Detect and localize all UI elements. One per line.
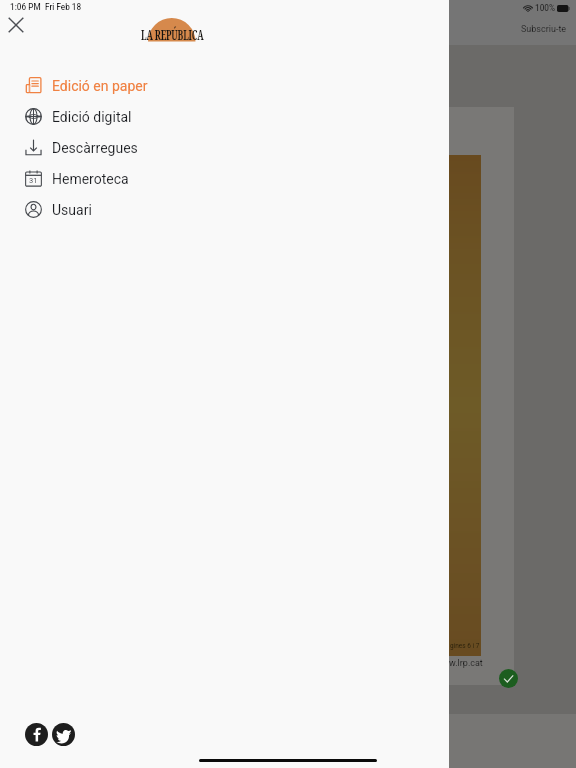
button[interactable]: Edició digital [0,101,449,132]
staticText: Subscriu-te [521,24,567,35]
button[interactable]: Facebook [25,723,48,746]
staticText: 100% [535,3,555,13]
staticText: 1:06 PM [10,2,41,12]
staticText: w.lrp.cat [449,658,483,669]
staticText: Edició digital [52,109,132,125]
staticText: Fri Feb 18 [45,2,82,12]
button[interactable]: Edició en paper [0,70,449,101]
staticText: 31 [29,176,38,185]
button[interactable]: Descàrregues [0,132,449,163]
staticText: Edició en paper [52,78,148,94]
button[interactable]: Close [4,13,28,37]
staticText: LA REPÚBLICA [141,24,204,44]
staticText: Hemeroteca [52,171,129,187]
staticText: gines 6 i 7 [450,642,480,650]
button[interactable]: Twitter [52,723,75,746]
staticText: Descàrregues [52,140,138,156]
button[interactable]: Downloaded [499,669,518,688]
staticText: Usuari [52,202,92,218]
button[interactable]: 31 [0,163,449,194]
button[interactable]: Usuari [0,194,449,225]
